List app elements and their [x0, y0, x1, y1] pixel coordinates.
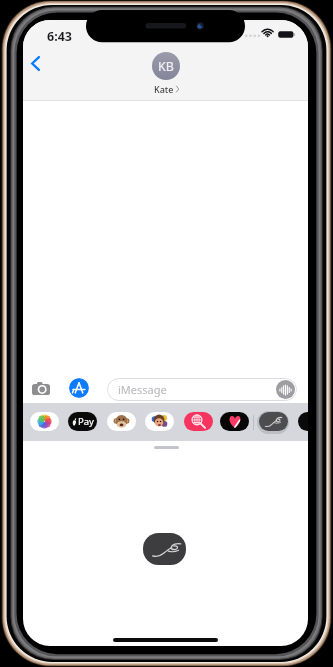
staticText: KB [158, 58, 174, 75]
button[interactable]: iMessage app [145, 412, 174, 431]
button[interactable]: KB [152, 52, 180, 95]
staticText: Kate [154, 83, 174, 95]
button[interactable]: Camera [32, 376, 50, 400]
button[interactable]: iMessage app [298, 412, 308, 431]
staticText: Pay [78, 415, 94, 428]
button[interactable]: iMessage app [259, 412, 288, 431]
staticText: 6:43 [47, 28, 72, 45]
button[interactable]: App Store [69, 377, 89, 401]
button[interactable]: iMessage app [184, 412, 213, 431]
button[interactable]: iMessage app [68, 412, 97, 431]
button[interactable]: Handwriting message [143, 533, 186, 565]
button[interactable]: iMessage [107, 378, 297, 401]
staticText: iMessage [118, 382, 167, 397]
button[interactable]: iMessage app [220, 412, 249, 431]
button[interactable]: Back [23, 49, 47, 78]
button[interactable]: iMessage app [107, 412, 136, 431]
button[interactable]: iMessage app [30, 412, 59, 431]
button[interactable]: Record audio message [276, 380, 295, 399]
